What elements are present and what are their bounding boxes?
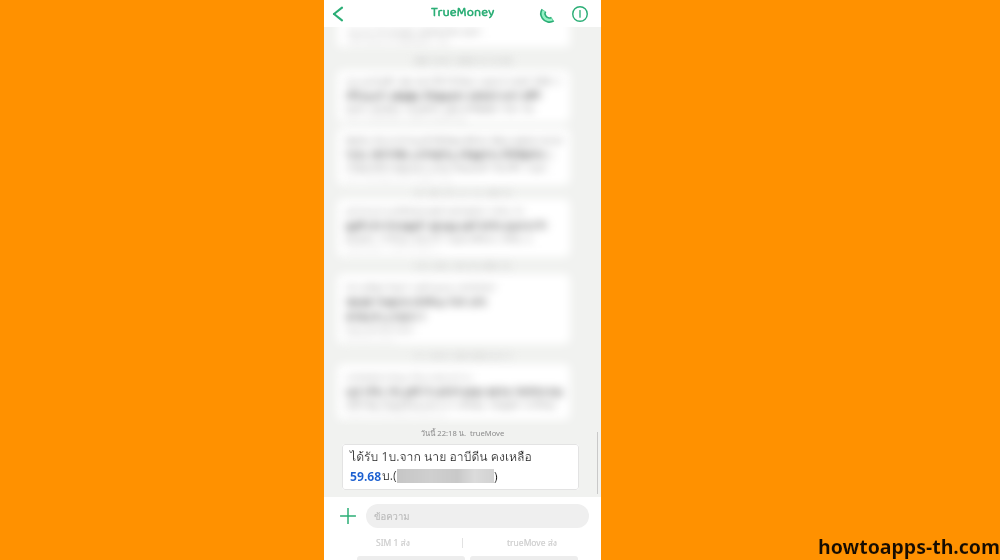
staticText: SIM 1 ส่ง xyxy=(376,536,410,550)
button[interactable]: Add attachment xyxy=(337,505,359,527)
button[interactable]: ข้อความ xyxy=(366,504,589,528)
staticText: ) xyxy=(494,468,498,485)
staticText: howtoapps-th.com xyxy=(818,533,1000,560)
button[interactable]: ได้รับ 1บ.จาก นาย อาบีดีน คงเหลือ xyxy=(342,444,579,490)
button[interactable]: Call xyxy=(538,3,560,25)
staticText: วันนี้ 22:18 น. trueMove xyxy=(324,427,601,439)
button[interactable]: trueMove ส่ง xyxy=(463,534,601,551)
staticText: trueMove ส่ง xyxy=(507,536,557,550)
staticText: TrueMoney xyxy=(431,2,495,23)
button[interactable]: Back xyxy=(327,3,349,25)
button[interactable]: Info xyxy=(569,3,591,25)
staticText: ได้รับ 1บ.จาก นาย อาบีดีน คงเหลือ xyxy=(350,447,532,466)
staticText: บ.( xyxy=(382,466,397,485)
staticText: ข้อความ xyxy=(374,509,410,524)
staticText: 59.68 xyxy=(350,468,382,485)
button[interactable]: SIM 1 ส่ง xyxy=(324,534,462,551)
